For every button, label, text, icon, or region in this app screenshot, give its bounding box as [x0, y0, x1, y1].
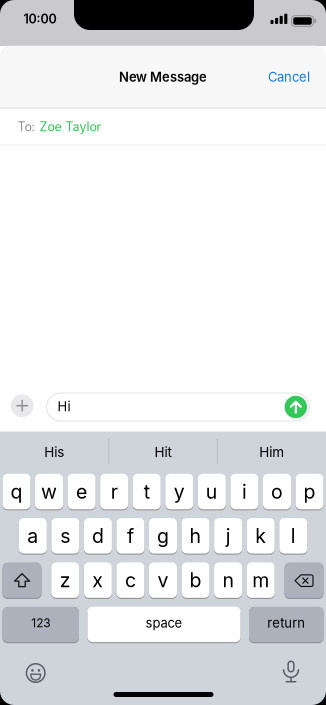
- button[interactable]: l: [279, 518, 307, 555]
- staticText: 10:00: [23, 11, 56, 26]
- staticText: Him: [259, 444, 284, 460]
- button[interactable]: b: [181, 562, 209, 599]
- staticText: r: [111, 480, 118, 503]
- staticText: t: [144, 480, 150, 503]
- staticText: d: [92, 524, 104, 548]
- button[interactable]: m: [247, 562, 275, 599]
- staticText: New Message: [119, 69, 207, 85]
- button[interactable]: a: [19, 518, 47, 555]
- button[interactable]: k: [247, 518, 275, 555]
- staticText: 123: [31, 616, 50, 630]
- staticText: v: [157, 568, 168, 592]
- button[interactable]: [284, 562, 323, 599]
- staticText: s: [60, 524, 70, 548]
- staticText: o: [271, 480, 283, 503]
- button[interactable]: Cancel: [259, 62, 319, 92]
- button[interactable]: j: [214, 518, 242, 555]
- staticText: e: [76, 480, 87, 503]
- staticText: b: [189, 568, 201, 592]
- staticText: f: [127, 524, 134, 548]
- button[interactable]: i: [230, 474, 258, 510]
- staticText: n: [223, 568, 234, 592]
- staticText: w: [41, 480, 57, 503]
- staticText: k: [255, 524, 266, 548]
- button[interactable]: f: [116, 518, 144, 555]
- button[interactable]: w: [35, 474, 63, 510]
- staticText: i: [242, 480, 247, 503]
- staticText: a: [27, 524, 38, 548]
- staticText: g: [157, 524, 169, 548]
- button[interactable]: u: [198, 474, 226, 510]
- staticText: z: [60, 568, 71, 592]
- button[interactable]: s: [51, 518, 79, 555]
- staticText: m: [252, 568, 269, 592]
- button[interactable]: q: [2, 474, 30, 510]
- button[interactable]: [2, 562, 41, 599]
- button[interactable]: His: [4, 434, 104, 470]
- button[interactable]: [281, 660, 301, 684]
- staticText: j: [226, 524, 231, 548]
- button[interactable]: [11, 394, 34, 417]
- staticText: space: [145, 615, 182, 631]
- staticText: x: [92, 568, 103, 592]
- staticText: y: [174, 480, 185, 503]
- staticText: h: [190, 524, 202, 548]
- button[interactable]: d: [84, 518, 112, 555]
- button[interactable]: e: [68, 474, 96, 510]
- button[interactable]: p: [295, 474, 323, 510]
- button[interactable]: c: [116, 562, 144, 599]
- button[interactable]: [26, 663, 46, 683]
- button[interactable]: h: [182, 518, 210, 555]
- staticText: Hit: [154, 444, 171, 460]
- button[interactable]: z: [51, 562, 79, 599]
- staticText: Hi: [57, 399, 70, 414]
- button[interactable]: n: [214, 562, 242, 599]
- button[interactable]: x: [84, 562, 112, 599]
- staticText: l: [291, 524, 296, 548]
- button[interactable]: space: [87, 607, 240, 643]
- button[interactable]: Hit: [113, 434, 213, 470]
- button[interactable]: v: [149, 562, 177, 599]
- staticText: Cancel: [268, 69, 310, 85]
- button[interactable]: g: [149, 518, 177, 555]
- staticText: return: [267, 615, 305, 631]
- button[interactable]: r: [100, 474, 128, 510]
- button[interactable]: return: [249, 607, 323, 643]
- staticText: q: [10, 480, 22, 503]
- staticText: His: [44, 444, 64, 460]
- button[interactable]: [285, 396, 307, 418]
- button[interactable]: Him: [222, 434, 322, 470]
- button[interactable]: 123: [2, 607, 79, 643]
- staticText: p: [303, 480, 315, 503]
- staticText: u: [206, 480, 218, 503]
- button[interactable]: o: [263, 474, 291, 510]
- staticText: To:: [17, 119, 35, 134]
- staticText: Zoe Taylor: [39, 119, 101, 134]
- button[interactable]: To:: [0, 108, 326, 145]
- button[interactable]: y: [165, 474, 193, 510]
- button[interactable]: t: [133, 474, 161, 510]
- staticText: c: [125, 568, 136, 592]
